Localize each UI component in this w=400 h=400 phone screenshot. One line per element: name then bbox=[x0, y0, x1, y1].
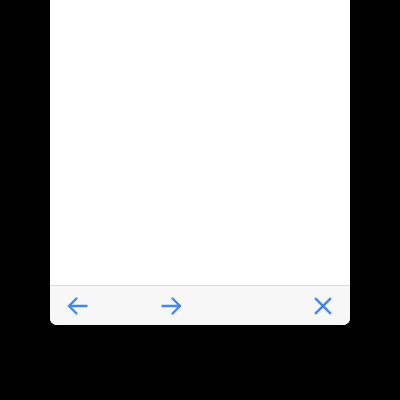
button[interactable]: Back bbox=[56, 286, 100, 325]
button[interactable]: Close bbox=[301, 286, 345, 325]
button[interactable]: Forward bbox=[149, 286, 193, 325]
